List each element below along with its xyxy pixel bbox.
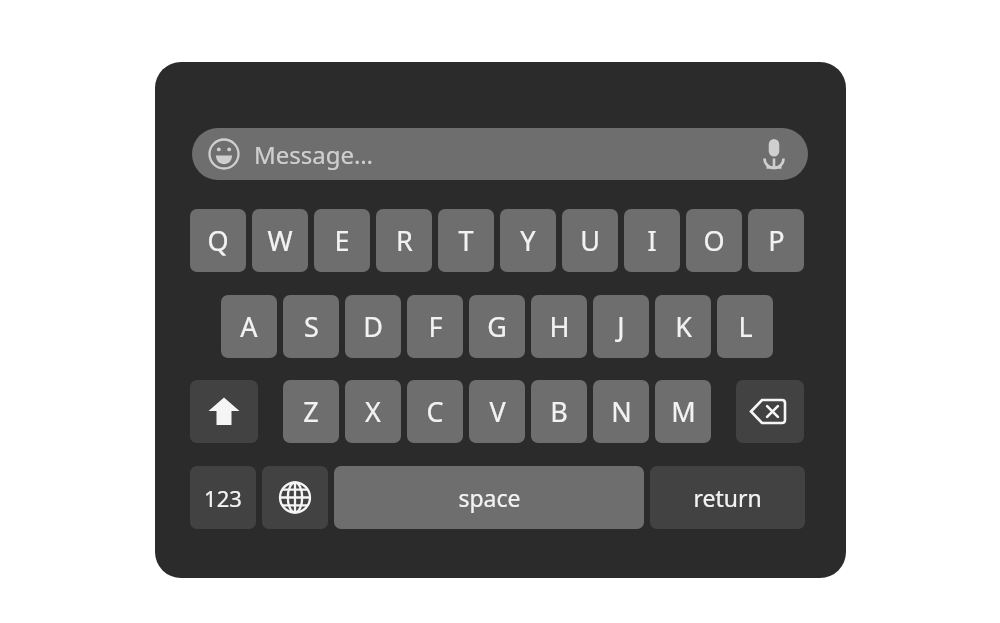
button[interactable]: Y bbox=[500, 209, 556, 272]
staticText: K bbox=[675, 308, 692, 345]
button[interactable]: 123 bbox=[190, 466, 256, 529]
button[interactable]: O bbox=[686, 209, 742, 272]
button[interactable]: V bbox=[469, 380, 525, 443]
staticText: space bbox=[458, 482, 521, 513]
button[interactable]: Q bbox=[190, 209, 246, 272]
staticText: P bbox=[768, 222, 785, 259]
staticText: Q bbox=[207, 222, 229, 259]
button[interactable]: P bbox=[748, 209, 804, 272]
staticText: 123 bbox=[204, 483, 242, 513]
staticText: return bbox=[693, 482, 762, 513]
staticText: U bbox=[580, 222, 600, 259]
staticText: Message… bbox=[254, 138, 374, 171]
button[interactable]: Backspace bbox=[736, 380, 804, 443]
button[interactable]: T bbox=[438, 209, 494, 272]
button[interactable]: R bbox=[376, 209, 432, 272]
button[interactable]: W bbox=[252, 209, 308, 272]
staticText: L bbox=[738, 308, 753, 345]
staticText: Z bbox=[303, 393, 319, 430]
staticText: N bbox=[611, 393, 632, 430]
staticText: W bbox=[267, 222, 293, 259]
staticText: B bbox=[550, 393, 568, 430]
button[interactable]: Z bbox=[283, 380, 339, 443]
button[interactable]: Voice input bbox=[754, 134, 794, 174]
button[interactable]: K bbox=[655, 295, 711, 358]
staticText: D bbox=[363, 308, 383, 345]
button[interactable]: S bbox=[283, 295, 339, 358]
button[interactable]: Emoji bbox=[192, 128, 808, 180]
staticText: X bbox=[365, 393, 381, 430]
button[interactable]: F bbox=[407, 295, 463, 358]
button[interactable]: M bbox=[655, 380, 711, 443]
button[interactable]: D bbox=[345, 295, 401, 358]
button[interactable]: Shift bbox=[190, 380, 258, 443]
staticText: H bbox=[549, 308, 570, 345]
staticText: J bbox=[617, 308, 625, 345]
button[interactable]: L bbox=[717, 295, 773, 358]
button[interactable]: X bbox=[345, 380, 401, 443]
button[interactable]: N bbox=[593, 380, 649, 443]
button[interactable]: J bbox=[593, 295, 649, 358]
button[interactable]: I bbox=[624, 209, 680, 272]
staticText: E bbox=[334, 222, 350, 259]
staticText: F bbox=[428, 308, 443, 345]
button[interactable]: Change keyboard language bbox=[262, 466, 328, 529]
button[interactable]: H bbox=[531, 295, 587, 358]
button[interactable]: U bbox=[562, 209, 618, 272]
staticText: R bbox=[396, 222, 413, 259]
staticText: A bbox=[240, 308, 258, 345]
staticText: O bbox=[703, 222, 725, 259]
staticText: C bbox=[426, 393, 444, 430]
staticText: V bbox=[489, 393, 506, 430]
button[interactable]: return bbox=[650, 466, 805, 529]
staticText: I bbox=[647, 222, 657, 259]
staticText: Y bbox=[520, 222, 536, 259]
staticText: T bbox=[458, 222, 474, 259]
button[interactable]: E bbox=[314, 209, 370, 272]
button[interactable]: B bbox=[531, 380, 587, 443]
staticText: M bbox=[671, 393, 696, 430]
button[interactable]: A bbox=[221, 295, 277, 358]
button[interactable]: space bbox=[334, 466, 644, 529]
button[interactable]: G bbox=[469, 295, 525, 358]
staticText: G bbox=[487, 308, 507, 345]
button[interactable]: C bbox=[407, 380, 463, 443]
staticText: S bbox=[304, 308, 319, 345]
button[interactable]: Emoji bbox=[204, 134, 244, 174]
